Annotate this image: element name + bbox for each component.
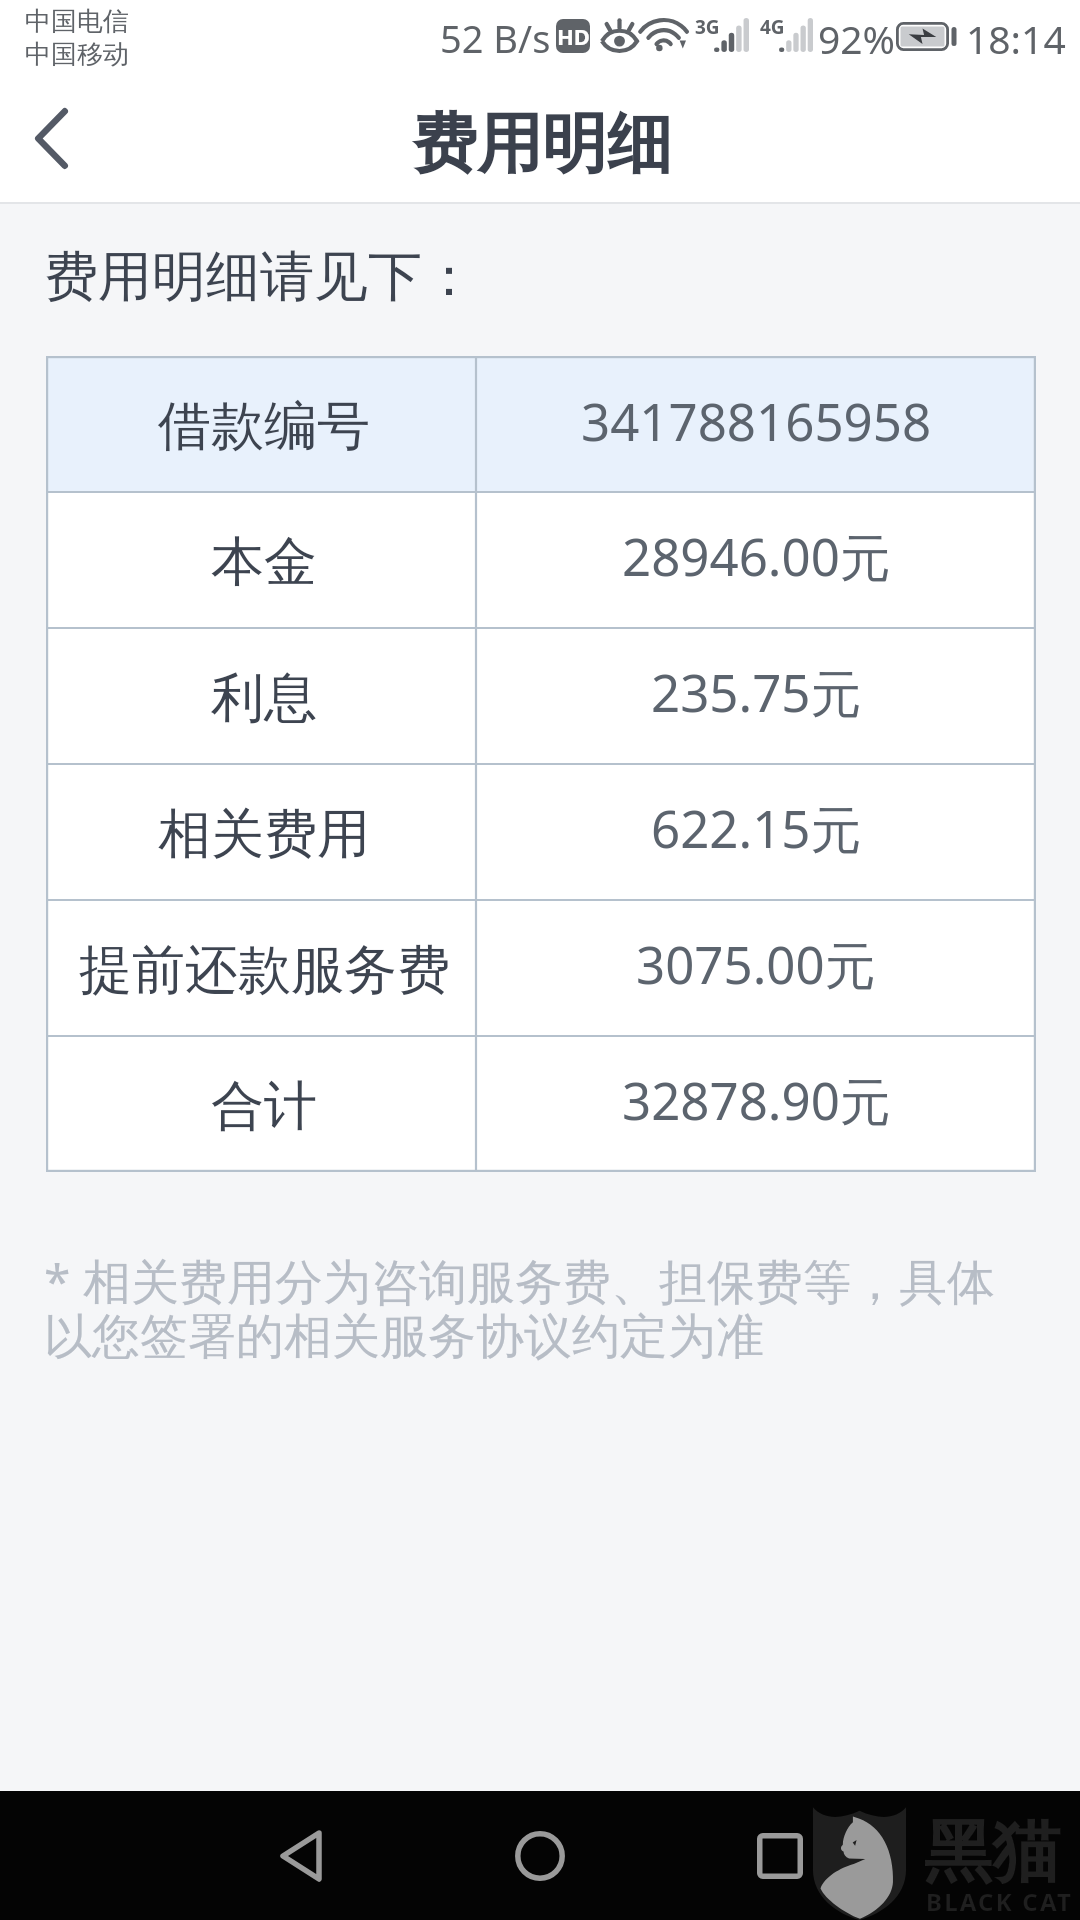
staticText: 提前还款服务费 (79, 937, 450, 1004)
button[interactable]: Home (475, 1791, 605, 1920)
staticText: BLACK CAT (926, 1885, 1074, 1918)
staticText: 28946.00元 (622, 521, 891, 591)
staticText: 相关费用 (158, 801, 370, 868)
staticText: 借款编号 (158, 393, 370, 460)
staticText: * 相关费用分为咨询服务费、担保费等，具体以您签署的相关服务协议约定为准 (44, 1248, 1006, 1368)
button[interactable]: 提前还款服务费 (46, 900, 1036, 1036)
staticText: 中国电信 (25, 5, 129, 38)
staticText: 本金 (211, 529, 317, 596)
staticText: 32878.90元 (622, 1065, 891, 1135)
staticText: 92% (818, 12, 896, 65)
staticText: 622.15元 (651, 793, 862, 863)
staticText: 18:14 (966, 12, 1066, 65)
staticText: 黑猫 (924, 1810, 1060, 1896)
staticText: 中国移动 (25, 38, 129, 71)
staticText: 合计 (211, 1073, 317, 1140)
button[interactable]: 本金 (46, 492, 1036, 628)
button[interactable]: 相关费用 (46, 764, 1036, 900)
button[interactable]: 利息 (46, 628, 1036, 764)
button[interactable]: Back (236, 1791, 366, 1920)
button[interactable]: 借款编号 (46, 356, 1036, 492)
staticText: 235.75元 (651, 657, 862, 727)
staticText: 3G (695, 14, 720, 40)
staticText: 52 B/s (440, 12, 551, 64)
staticText: 341788165958 (581, 386, 932, 455)
staticText: 3075.00元 (636, 929, 876, 999)
staticText: 利息 (211, 665, 317, 732)
button[interactable]: 合计 (46, 1036, 1036, 1172)
staticText: 4G (760, 14, 785, 40)
button[interactable]: Back (0, 75, 103, 201)
button[interactable]: Recents (715, 1791, 845, 1920)
staticText: 费用明细请见下： (44, 243, 476, 311)
staticText: HD (557, 21, 590, 51)
staticText: 费用明细 (412, 103, 672, 185)
